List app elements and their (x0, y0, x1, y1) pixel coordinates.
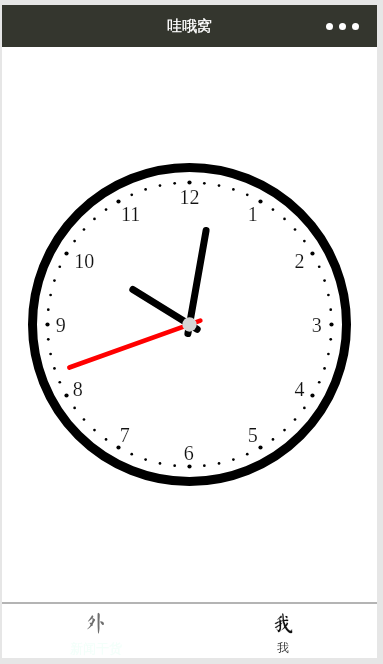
button[interactable]: 外 (2, 604, 189, 658)
staticText: 哇哦窝 (167, 17, 212, 36)
staticText: 外 (84, 612, 107, 634)
staticText: 新闻干货 (70, 640, 122, 656)
staticText: 我 (277, 640, 289, 655)
staticText: 我 (272, 612, 295, 634)
button[interactable]: More options (323, 23, 362, 30)
button[interactable]: 我 (189, 604, 377, 658)
